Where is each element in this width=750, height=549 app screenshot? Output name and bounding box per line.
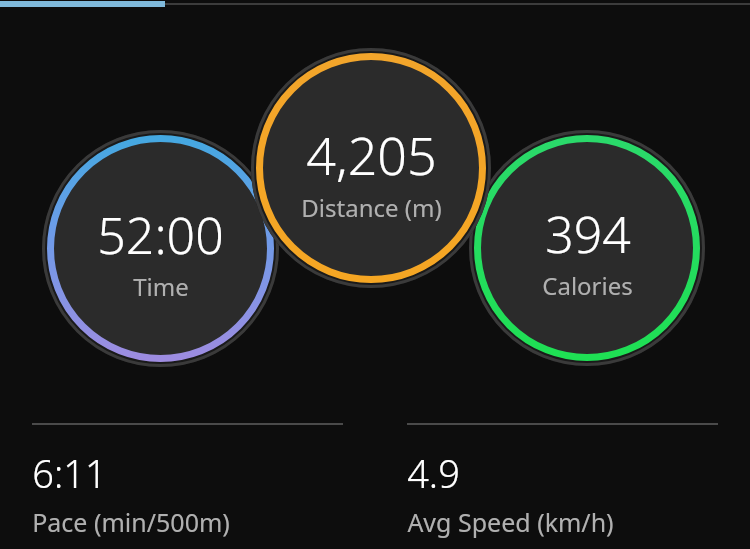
staticText: 4,205: [306, 119, 437, 190]
staticText: 4.9: [407, 447, 460, 499]
staticText: 6:11: [32, 447, 107, 499]
button[interactable]: Calories 394: [469, 130, 705, 366]
button[interactable]: Distance 4,205 meters: [251, 48, 491, 288]
staticText: Distance (m): [301, 191, 442, 224]
staticText: 52:00: [97, 201, 224, 269]
staticText: 394: [545, 200, 631, 268]
button[interactable]: 4.9: [375, 423, 750, 539]
staticText: Pace (min/500m): [32, 505, 230, 539]
button[interactable]: 6:11: [0, 423, 375, 539]
button[interactable]: Time 52:00: [42, 130, 279, 367]
staticText: Calories: [542, 269, 633, 302]
staticText: Avg Speed (km/h): [407, 505, 614, 539]
staticText: Time: [133, 270, 189, 303]
